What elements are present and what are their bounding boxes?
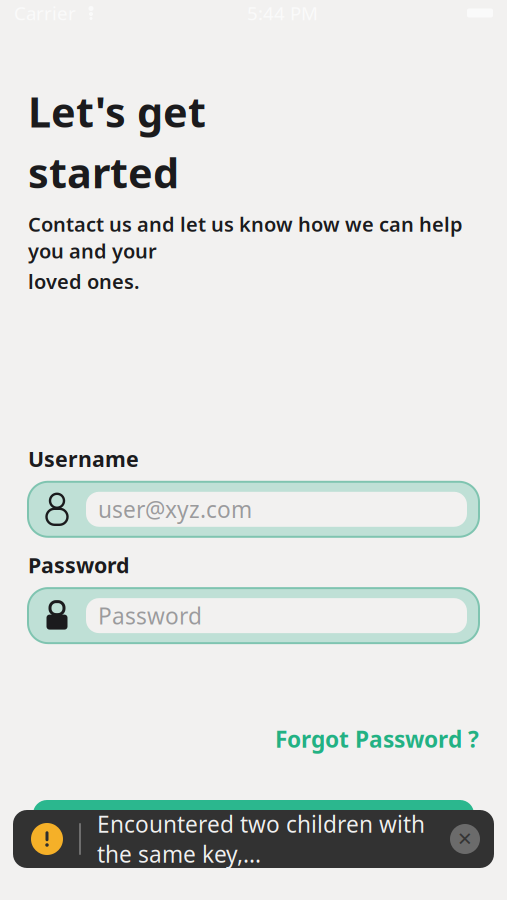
staticText: Encountered two children with the same k… [97, 809, 425, 869]
button[interactable]: Password [28, 588, 479, 643]
button[interactable]: Forgot Password ? [275, 724, 479, 754]
button[interactable]: Dismiss [450, 824, 480, 854]
staticText: Forgot Password ? [275, 724, 479, 754]
staticText: ✕ [457, 828, 473, 850]
button[interactable]: Sign In [33, 800, 474, 856]
staticText: 5:44 PM [247, 1, 318, 25]
staticText: Username [28, 444, 139, 473]
staticText: Password [28, 551, 129, 579]
staticText: Password [98, 601, 202, 631]
staticText: user@xyz.com [98, 494, 252, 524]
staticText: loved ones. [28, 268, 140, 294]
staticText: Contact us and let us know how we can he… [28, 211, 463, 264]
staticText: started [28, 145, 179, 200]
staticText: Let's get [28, 84, 206, 139]
button[interactable]: user@xyz.com [28, 482, 479, 537]
